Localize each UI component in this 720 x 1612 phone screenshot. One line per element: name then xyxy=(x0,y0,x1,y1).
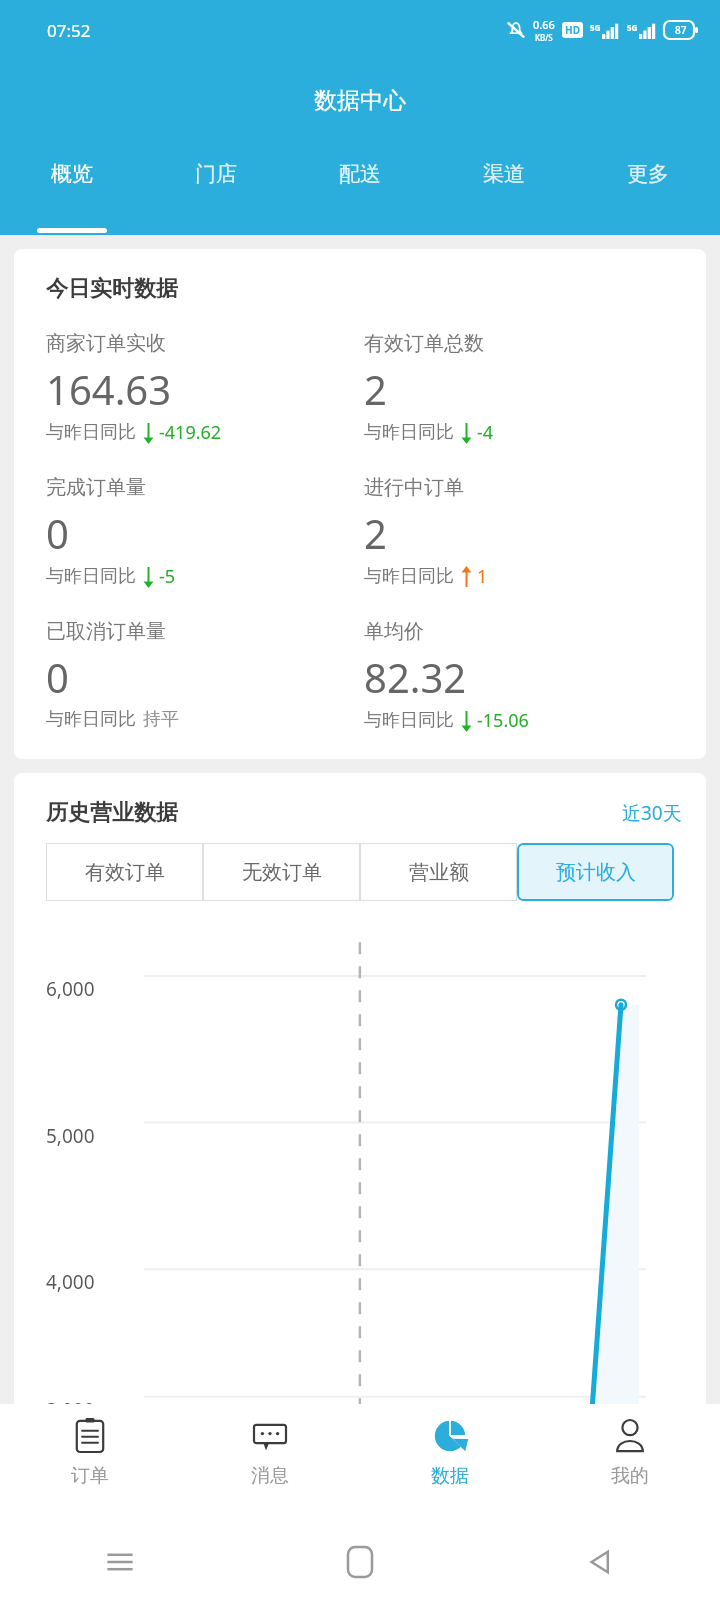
button[interactable]: 无效订单 xyxy=(203,843,360,901)
staticText: 0 xyxy=(46,650,69,704)
staticText: 6,000 xyxy=(46,976,95,1002)
staticText: 5G xyxy=(627,22,638,33)
staticText: 历史营业数据 xyxy=(46,799,178,827)
other: 消息 xyxy=(250,1416,290,1456)
button[interactable]: 渠道 xyxy=(432,155,576,235)
staticText: -5 xyxy=(159,564,176,589)
staticText: 2 xyxy=(364,362,387,416)
staticText: 已取消订单量 xyxy=(46,619,166,644)
staticText: 07:52 xyxy=(47,19,91,42)
staticText: 更多 xyxy=(627,161,669,187)
staticText: 门店 xyxy=(195,161,237,187)
other: 数据 xyxy=(430,1416,470,1456)
staticText: 消息 xyxy=(251,1464,289,1488)
staticText: 预计收入 xyxy=(556,860,636,885)
button[interactable]: 概览 xyxy=(0,155,144,235)
staticText: -419.62 xyxy=(159,420,222,445)
staticText: 有效订单总数 xyxy=(364,331,484,356)
staticText: 0 xyxy=(46,506,69,560)
staticText: 与昨日同比 xyxy=(46,565,136,588)
staticText: 渠道 xyxy=(483,161,525,187)
staticText: 与昨日同比 xyxy=(46,421,136,444)
staticText: 3,000 xyxy=(46,1397,95,1404)
button[interactable]: 我的 xyxy=(540,1404,720,1512)
staticText: 近30天 xyxy=(622,800,682,826)
staticText: 单均价 xyxy=(364,619,424,644)
button[interactable]: 订单 xyxy=(0,1404,180,1512)
staticText: 与昨日同比 xyxy=(46,708,136,731)
staticText: HD xyxy=(565,23,580,37)
staticText: 1 xyxy=(477,564,488,589)
staticText: KB/S xyxy=(535,32,553,43)
staticText: 82.32 xyxy=(364,650,467,704)
staticText: 我的 xyxy=(611,1464,649,1488)
button[interactable]: 消息 xyxy=(180,1404,360,1512)
staticText: -4 xyxy=(477,420,494,445)
button[interactable]: 近30天 xyxy=(622,800,682,826)
button[interactable]: 配送 xyxy=(288,155,432,235)
button[interactable]: 营业额 xyxy=(360,843,517,901)
staticText: 配送 xyxy=(339,161,381,187)
button[interactable]: 有效订单 xyxy=(46,843,203,901)
staticText: 5G xyxy=(590,22,601,33)
staticText: 数据中心 xyxy=(314,86,406,115)
staticText: 进行中订单 xyxy=(364,475,464,500)
other: 订单 xyxy=(70,1416,110,1456)
staticText: 完成订单量 xyxy=(46,475,146,500)
button[interactable]: 数据 xyxy=(360,1404,540,1512)
button[interactable]: 门店 xyxy=(144,155,288,235)
staticText: 营业额 xyxy=(409,860,469,885)
staticText: 4,000 xyxy=(46,1269,95,1295)
staticText: 有效订单 xyxy=(85,860,165,885)
staticText: 今日实时数据 xyxy=(46,275,178,303)
staticText: 与昨日同比 xyxy=(364,421,454,444)
staticText: 商家订单实收 xyxy=(46,331,166,356)
staticText: 164.63 xyxy=(46,362,172,416)
staticText: 0.66 xyxy=(533,17,555,32)
staticText: 数据 xyxy=(431,1464,469,1488)
button[interactable]: 预计收入 xyxy=(517,843,674,901)
staticText: 概览 xyxy=(51,161,93,187)
staticText: 无效订单 xyxy=(242,860,322,885)
other: 我的 xyxy=(610,1416,650,1456)
staticText: 2 xyxy=(364,506,387,560)
staticText: 订单 xyxy=(71,1464,109,1488)
staticText: 与昨日同比 xyxy=(364,565,454,588)
staticText: 5,000 xyxy=(46,1123,95,1149)
staticText: 与昨日同比 xyxy=(364,709,454,732)
staticText: -15.06 xyxy=(477,708,529,733)
staticText: 87 xyxy=(675,23,687,37)
button[interactable]: 更多 xyxy=(576,155,720,235)
staticText: 持平 xyxy=(143,708,179,731)
